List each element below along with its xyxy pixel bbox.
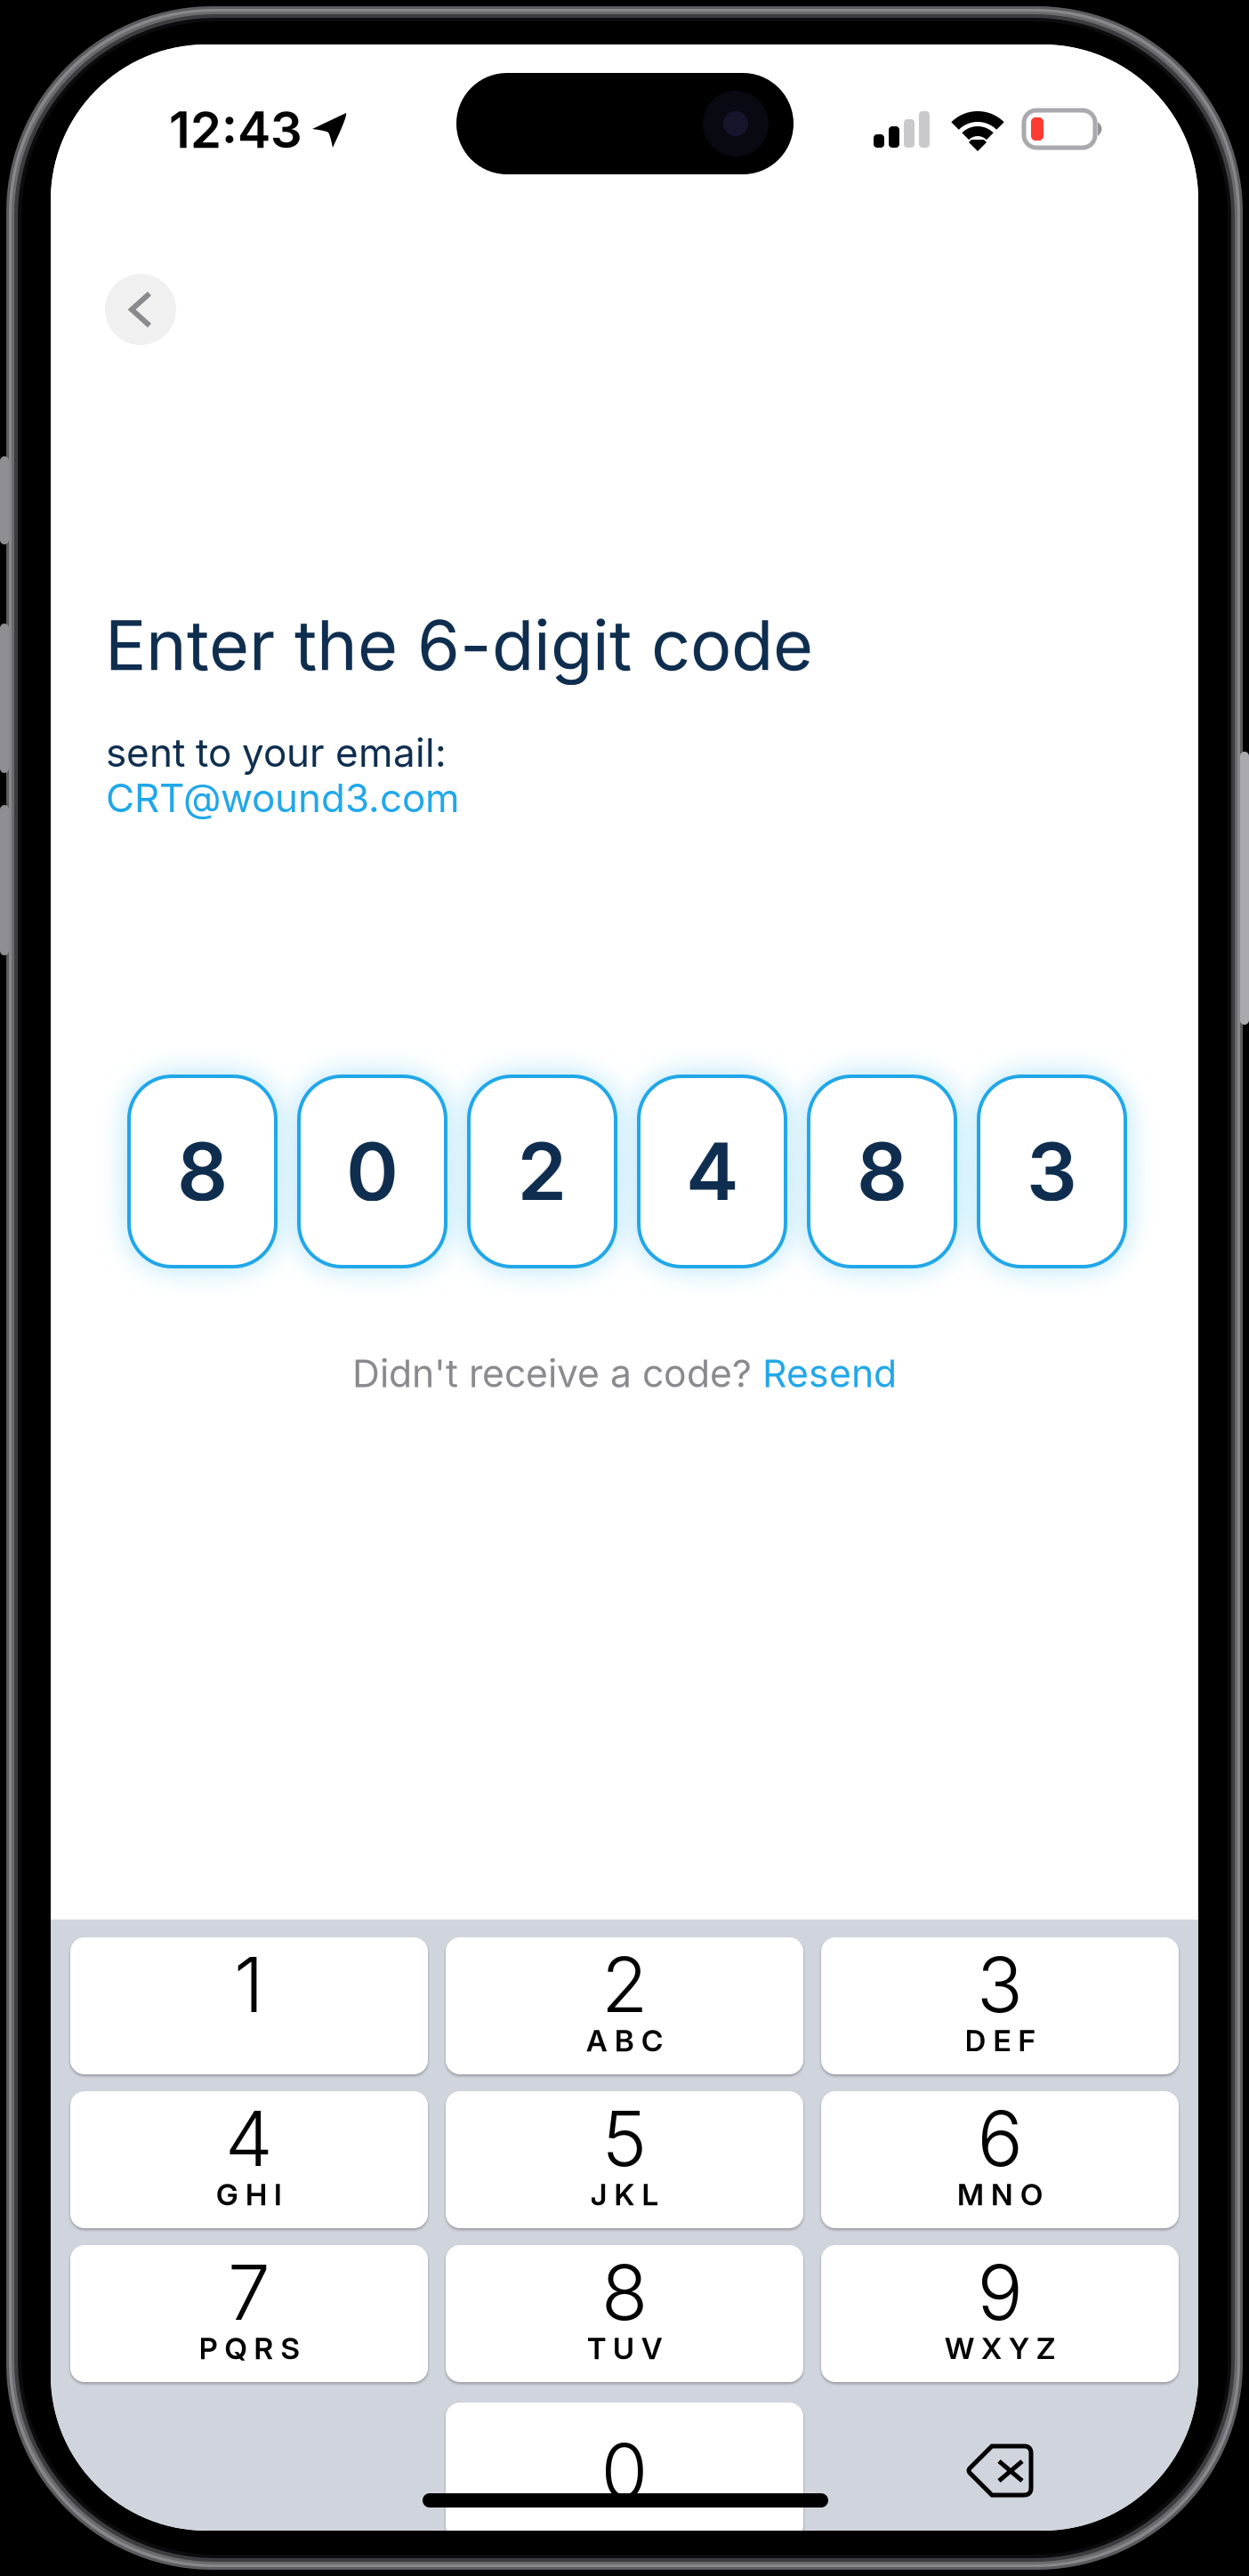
staticText: 0 <box>346 1123 399 1220</box>
button[interactable]: 6 <box>821 2091 1179 2228</box>
button[interactable]: 4 <box>70 2091 428 2228</box>
staticText: 5 <box>602 2092 647 2184</box>
button[interactable]: Delete <box>821 2403 1179 2540</box>
button[interactable]: 2 <box>446 1937 803 2074</box>
staticText: Didn't receive a code? <box>352 1350 762 1396</box>
staticText: M N O <box>957 2176 1043 2212</box>
button[interactable]: Resend <box>762 1350 897 1396</box>
staticText: 2 <box>517 1123 567 1220</box>
staticText: 3 <box>977 1939 1023 2030</box>
staticText: 0 <box>601 2425 648 2517</box>
staticText: 6 <box>977 2092 1023 2184</box>
button[interactable]: 9 <box>821 2245 1179 2382</box>
staticText: Resend <box>762 1350 897 1396</box>
staticText: D E F <box>965 2023 1035 2058</box>
staticText: Enter the 6-digit code <box>105 603 813 687</box>
staticText: 3 <box>1027 1123 1077 1220</box>
button[interactable]: 8 <box>446 2245 803 2382</box>
staticText: CRT@wound3.com <box>106 774 460 822</box>
staticText: 8 <box>177 1123 228 1220</box>
staticText: T U V <box>587 2330 662 2366</box>
button[interactable]: 5 <box>446 2091 803 2228</box>
button[interactable]: 7 <box>70 2245 428 2382</box>
staticText: P Q R S <box>199 2330 299 2366</box>
staticText: 4 <box>225 2092 273 2184</box>
staticText: 8 <box>857 1123 907 1220</box>
button[interactable]: Back <box>105 274 176 345</box>
staticText: 12:43 <box>169 100 302 160</box>
staticText: 7 <box>228 2246 270 2338</box>
staticText: 2 <box>601 1939 648 2030</box>
button[interactable]: 1 <box>70 1937 428 2074</box>
staticText: W X Y Z <box>945 2330 1055 2366</box>
staticText: A B C <box>586 2023 663 2058</box>
staticText: G H I <box>216 2176 282 2212</box>
staticText: 4 <box>686 1123 738 1220</box>
staticText: J K L <box>590 2176 659 2212</box>
button[interactable]: 0 <box>446 2403 803 2540</box>
button[interactable]: 3 <box>821 1937 1179 2074</box>
staticText: 9 <box>977 2246 1023 2338</box>
staticText: sent to your email: <box>106 729 447 776</box>
staticText: 8 <box>601 2246 648 2338</box>
staticText: 1 <box>234 1939 264 2030</box>
